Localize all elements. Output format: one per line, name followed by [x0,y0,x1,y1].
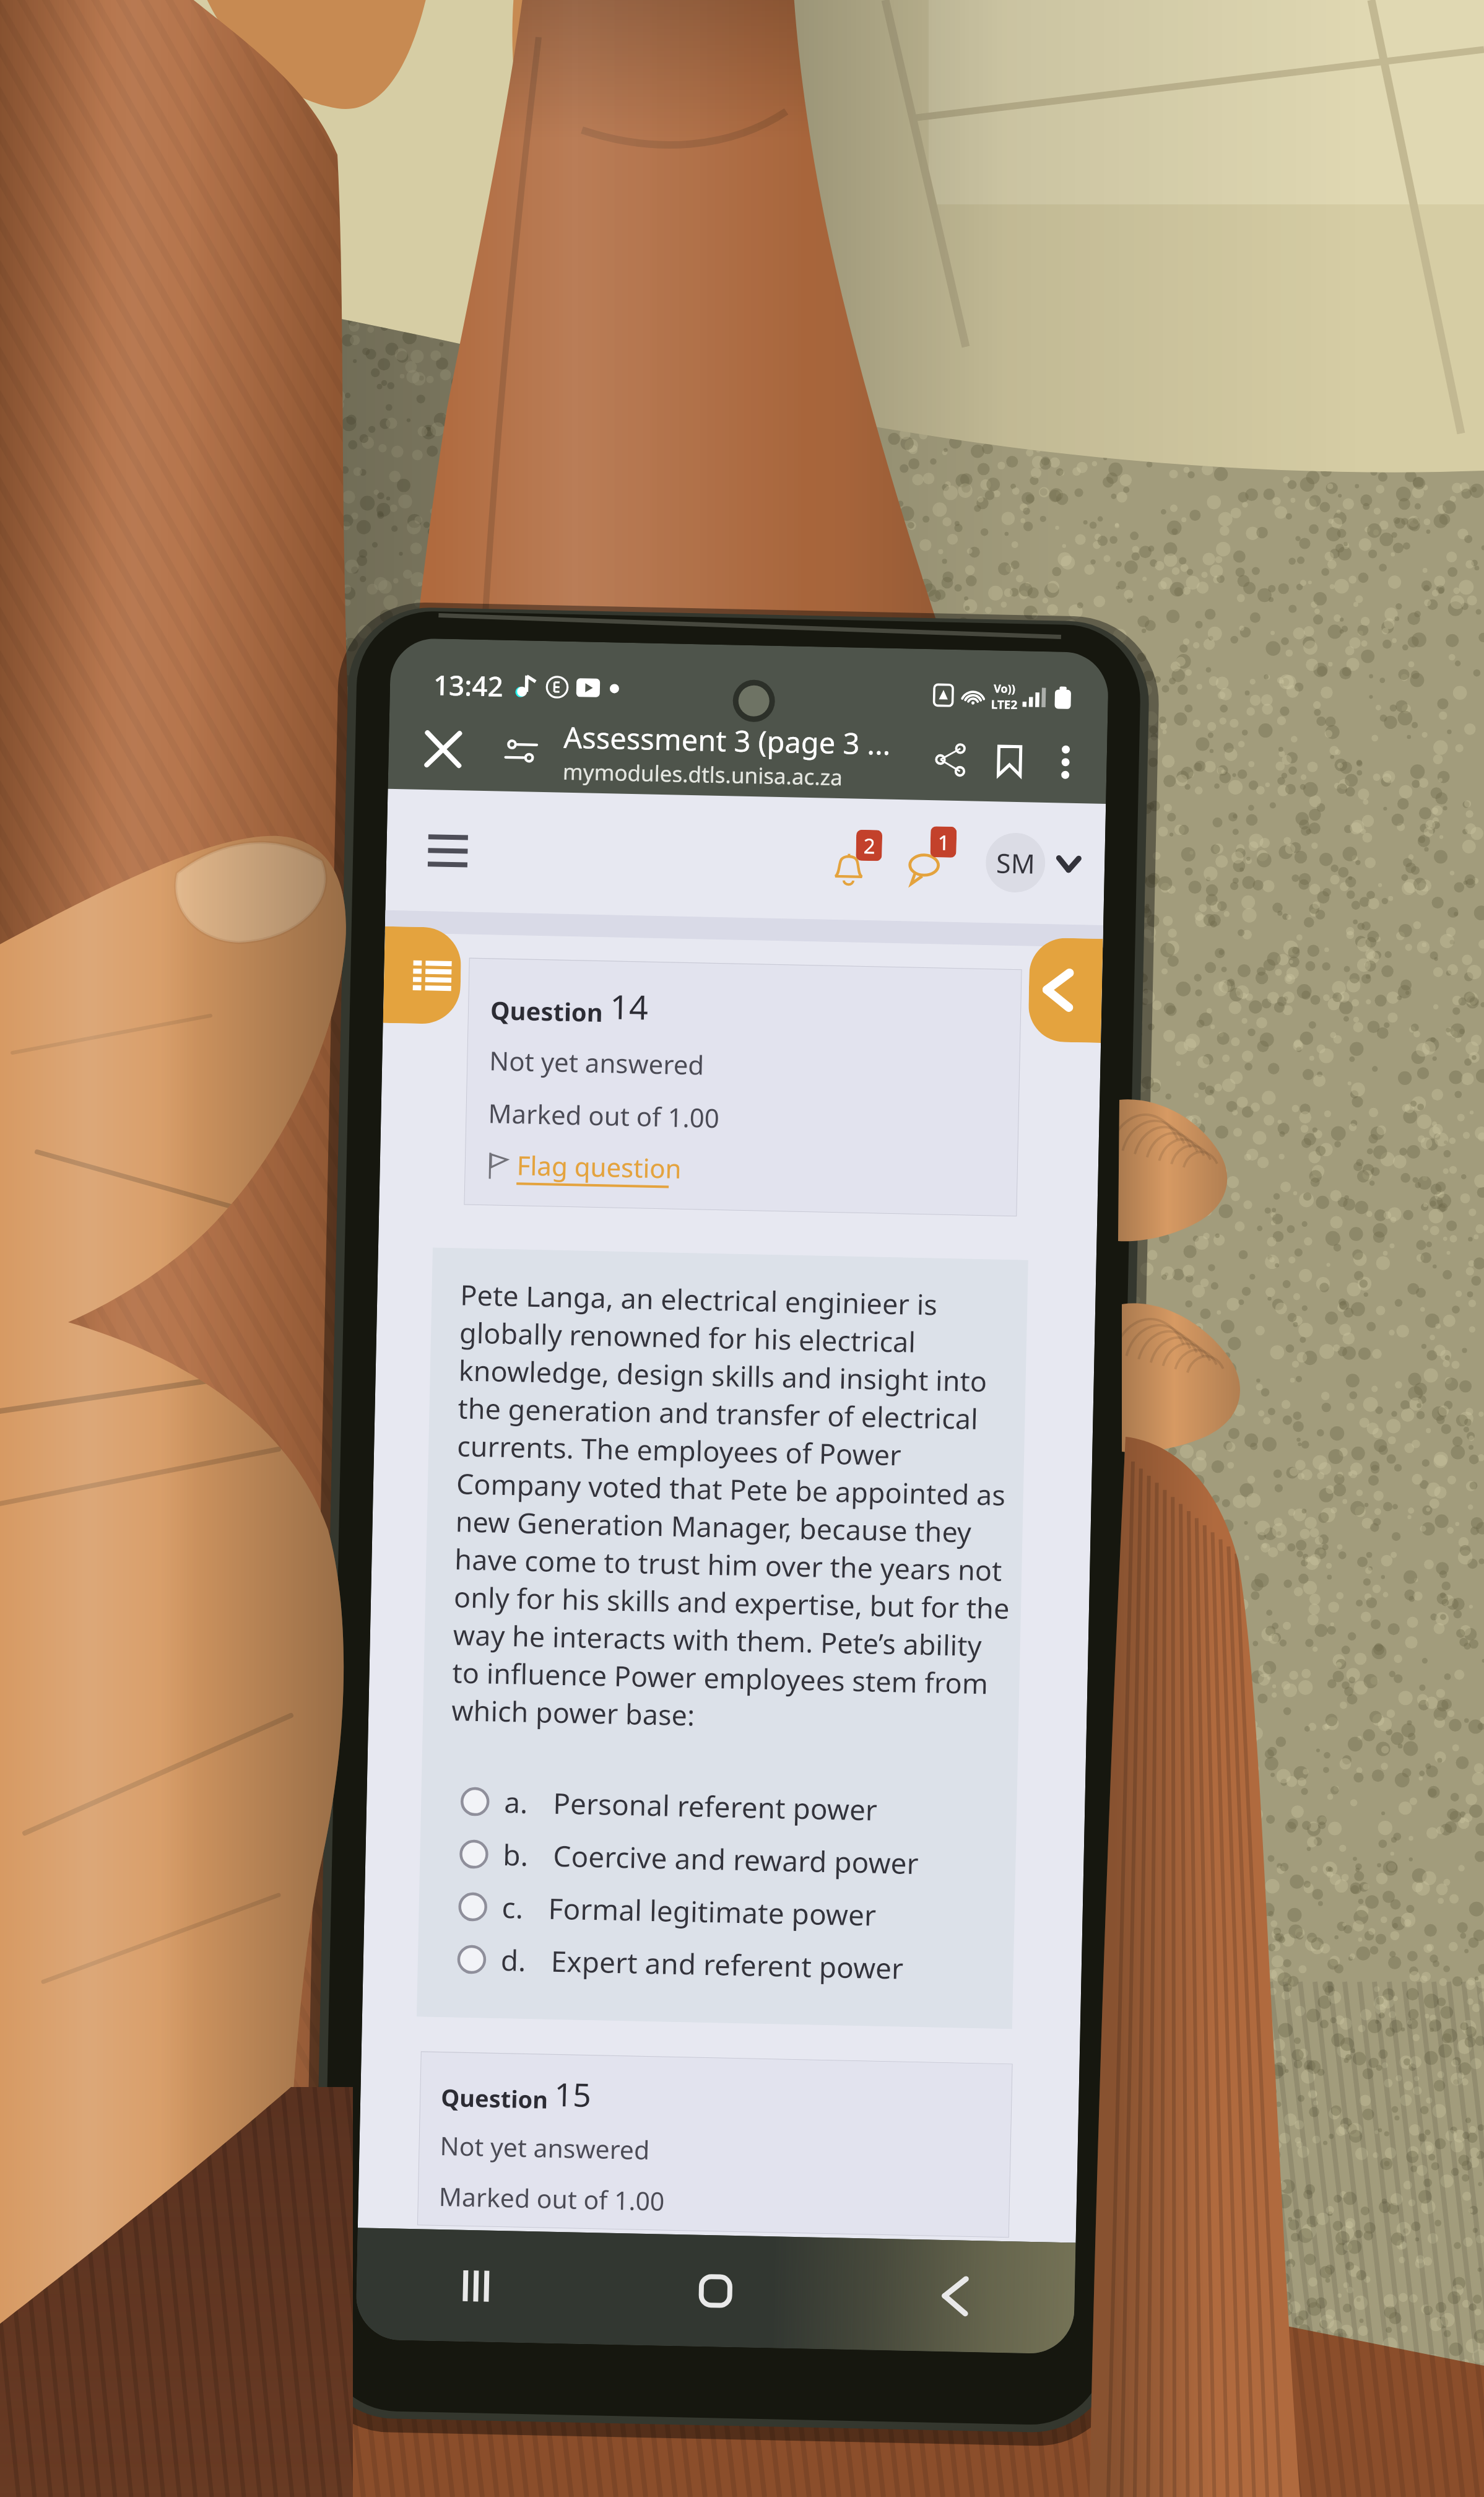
staticText: way he interacts with them. Pete’s abili… [453,1615,982,1664]
staticText: Assessment 3 (page 3 ... [563,717,891,763]
button[interactable]: c. [447,1880,1010,1944]
staticText: Question [441,2081,555,2115]
staticText: Vo)) [994,681,1016,697]
staticText: 14 [609,983,649,1030]
button[interactable]: Flag question [487,1147,682,1188]
button[interactable]: Messages [902,823,977,899]
staticText: Coercive and reward power [553,1836,919,1883]
staticText: Pete Langa, an electrical enginieer is [460,1275,938,1323]
button[interactable]: Menu [413,816,483,886]
button[interactable]: Bookmark [982,734,1037,788]
staticText: knowledge, design skills and insight int… [458,1351,988,1400]
button[interactable]: Home [594,2233,836,2349]
staticText: Company voted that Pete be appointed as [456,1464,1006,1514]
staticText: b. [503,1835,529,1875]
button[interactable]: Question navigation [383,926,462,1025]
staticText: c. [501,1888,524,1927]
staticText: Marked out of 1.00 [439,2179,665,2218]
staticText: Personal referent power [553,1783,878,1829]
staticText: mymodules.dtls.unisa.ac.za [563,757,843,792]
staticText: only for his skills and expertise, but f… [454,1578,1010,1627]
staticText: Marked out of 1.00 [488,1095,720,1135]
button[interactable]: Share [923,733,977,787]
button[interactable]: b. [448,1827,1011,1891]
staticText: the generation and transfer of electrica… [457,1389,979,1437]
staticText: LTE2 [991,696,1018,713]
staticText: Flag question [516,1147,682,1186]
button[interactable]: Close [413,719,474,780]
staticText: currents. The employees of Power [457,1426,902,1474]
staticText: Not yet answered [440,2128,650,2167]
staticText: have come to trust him over the years no… [454,1540,1003,1589]
staticText: SM [996,844,1036,882]
staticText: a. [504,1782,529,1822]
staticText: Formal legitimate power [548,1889,877,1934]
staticText: 15 [554,2071,592,2116]
button[interactable]: Previous page [1028,937,1103,1043]
button[interactable]: a. [449,1774,1012,1839]
staticText: d. [500,1940,527,1980]
staticText: Not yet answered [489,1042,704,1082]
button[interactable]: Site settings [495,724,548,777]
button[interactable]: Recent apps [355,2228,597,2344]
staticText: 2 [863,832,876,860]
button[interactable]: Notifications [827,822,901,897]
staticText: which power base: [451,1691,695,1734]
staticText: to influence Power employees stem from [452,1653,989,1702]
button[interactable]: More options [1042,739,1089,786]
button[interactable]: Back [834,2238,1076,2354]
staticText: globally renowned for his electrical [459,1313,916,1360]
staticText: new Generation Manager, because they [455,1502,972,1551]
staticText: Expert and referent power [551,1941,904,1988]
button[interactable]: d. [446,1932,1009,1997]
staticText: 13:42 [433,666,504,705]
staticText: 1 [938,828,950,856]
staticText: Question [490,993,610,1029]
button[interactable]: SM [985,832,1079,894]
